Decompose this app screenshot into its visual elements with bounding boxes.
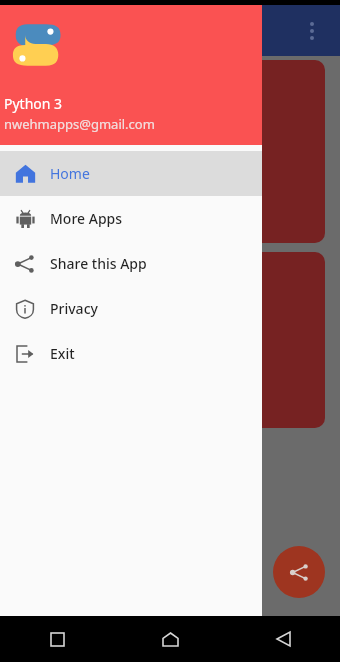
- staticText: More Apps: [50, 209, 123, 228]
- staticText: Privacy: [50, 299, 98, 318]
- staticText: Home: [50, 164, 90, 183]
- button[interactable]: Share this App: [0, 241, 262, 286]
- staticText: Exit: [50, 344, 75, 363]
- staticText: Function: [44, 341, 106, 361]
- button[interactable]: Recent apps: [0, 616, 114, 662]
- button[interactable]: More Apps: [0, 196, 262, 241]
- staticText: Loops: [44, 202, 87, 222]
- button[interactable]: Home: [0, 151, 262, 196]
- staticText: Statements &: [44, 179, 140, 199]
- staticText: Share this App: [50, 254, 147, 273]
- button[interactable]: Function: [24, 252, 325, 428]
- staticText: Control: [44, 156, 97, 176]
- button[interactable]: Back: [227, 616, 340, 662]
- button[interactable]: Share: [273, 546, 325, 598]
- button[interactable]: Control: [24, 60, 325, 243]
- button[interactable]: Home: [114, 616, 227, 662]
- button[interactable]: More options: [294, 13, 330, 49]
- button[interactable]: Privacy: [0, 286, 262, 331]
- staticText: Python 3: [4, 94, 63, 113]
- staticText: nwehmapps@gmail.com: [4, 115, 155, 133]
- button[interactable]: Exit: [0, 331, 262, 376]
